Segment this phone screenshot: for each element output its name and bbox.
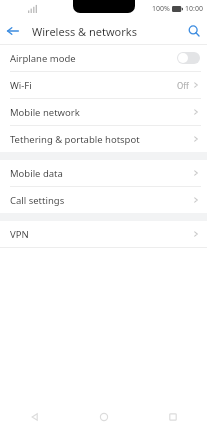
button[interactable]: Mobile network	[0, 99, 207, 125]
button[interactable]: Wi-Fi	[0, 72, 207, 98]
button[interactable]: Airplane mode	[0, 45, 207, 71]
staticText: Wireless & networks	[32, 24, 137, 39]
button[interactable]: VPN	[0, 221, 207, 247]
staticText: Wi-Fi	[10, 79, 177, 92]
button[interactable]: Call settings	[0, 187, 207, 213]
staticText: Off	[177, 80, 189, 91]
staticText: Call settings	[10, 194, 192, 207]
button[interactable]: Back	[0, 404, 69, 430]
button[interactable]: Home	[69, 404, 138, 430]
staticText: Mobile network	[10, 106, 192, 119]
staticText: VPN	[10, 228, 192, 241]
staticText: Airplane mode	[10, 52, 177, 65]
button[interactable]: Search	[181, 18, 207, 44]
button[interactable]: Mobile data	[0, 160, 207, 186]
button[interactable]: Back	[0, 18, 26, 44]
staticText: 100%	[152, 4, 170, 14]
staticText: Mobile data	[10, 167, 192, 180]
staticText: 10:00	[185, 4, 203, 14]
staticText: Tethering & portable hotspot	[10, 133, 192, 146]
button[interactable]: Tethering & portable hotspot	[0, 126, 207, 152]
button[interactable]: Recent apps	[138, 404, 207, 430]
